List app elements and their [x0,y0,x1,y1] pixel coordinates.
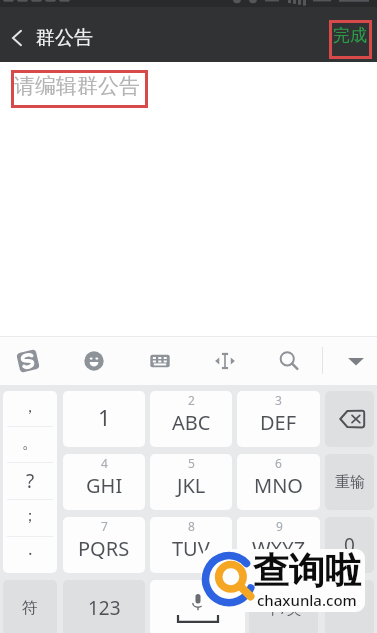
staticText: 5 [188,455,195,471]
button[interactable]: 符 [3,580,57,633]
staticText: 123 [88,595,121,621]
button[interactable]: 完成 [333,25,367,46]
button[interactable]: ? [3,463,57,499]
button[interactable]: 4 [63,454,145,510]
staticText: PQRS [78,535,130,562]
button[interactable]: 。 [3,427,57,462]
button[interactable]: Space / voice input [150,580,245,633]
button[interactable]: Back [0,10,34,65]
staticText: ， [22,397,38,417]
staticText: 请编辑群公告 [14,73,140,99]
button[interactable]: 123 [63,580,145,633]
button[interactable] [325,580,374,633]
staticText: 7 [101,518,108,534]
staticText: 8 [188,518,195,534]
button[interactable]: Keyboard layout [147,341,173,381]
staticText: ； [22,506,38,526]
button[interactable]: ， [3,391,57,426]
button[interactable]: 2 [150,391,232,447]
button[interactable]: 5 [150,454,232,510]
button[interactable]: 1 [63,391,145,447]
staticText: ? [26,468,35,494]
staticText: 0 [344,532,355,558]
button[interactable]: Move cursor [212,341,238,381]
staticText: JKL [177,472,206,499]
button[interactable]: ； [3,500,57,536]
button[interactable]: 0 [325,517,374,573]
button[interactable]: · [3,537,57,573]
button[interactable]: Search [276,341,302,381]
staticText: 4 [101,455,108,471]
button[interactable]: 重输 [325,454,374,510]
button[interactable]: 6 [237,454,320,510]
button[interactable]: Sogou input [15,341,41,381]
staticText: 符 [22,598,38,618]
staticText: DEF [260,409,297,436]
button[interactable]: Emoji [81,341,107,381]
staticText: 2 [188,392,195,408]
staticText: 6 [275,455,282,471]
staticText: 1 [98,402,111,432]
staticText: 群公告 [36,26,93,50]
staticText: 中/英 [266,598,302,618]
staticText: chaxunla.com [257,590,357,610]
button[interactable]: 8 [150,517,232,573]
staticText: 3 [275,392,282,408]
button[interactable]: 3 [237,391,320,447]
button[interactable]: 中/英 [249,580,318,633]
staticText: TUV [172,535,210,562]
button[interactable]: 9 [237,517,320,573]
staticText: MNO [254,472,303,499]
staticText: 。 [22,432,39,453]
staticText: GHI [86,472,123,499]
staticText: 完成 [333,25,367,46]
button[interactable]: Hide keyboard [343,341,369,381]
button[interactable]: Backspace [325,391,374,447]
button[interactable]: 7 [63,517,145,573]
staticText: · [28,542,33,565]
staticText: 9 [276,518,283,534]
staticText: WXYZ [252,535,306,562]
staticText: 重输 [335,473,365,492]
staticText: ABC [172,409,211,436]
staticText: 查询啦 [253,549,361,593]
